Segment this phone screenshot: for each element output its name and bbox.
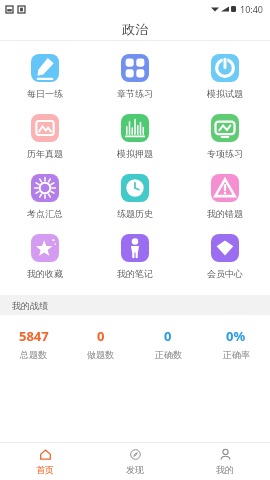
- staticText: 我的战绩: [12, 300, 48, 311]
- button[interactable]: 会员中心: [180, 230, 270, 283]
- button[interactable]: 我的: [180, 443, 270, 480]
- staticText: 我的: [216, 464, 234, 475]
- staticText: 练题历史: [117, 208, 153, 219]
- staticText: 正确数: [155, 349, 182, 360]
- staticText: 章节练习: [117, 88, 153, 99]
- staticText: 考点汇总: [27, 208, 63, 219]
- staticText: 首页: [36, 464, 54, 475]
- staticText: 0: [97, 327, 105, 345]
- staticText: 10:40: [240, 3, 264, 15]
- staticText: 正确率: [223, 349, 250, 360]
- button[interactable]: 模拟押题: [90, 110, 180, 163]
- staticText: 做题数: [87, 349, 114, 360]
- button[interactable]: 5847: [0, 327, 67, 360]
- button[interactable]: 我的收藏: [0, 230, 90, 283]
- button[interactable]: 章节练习: [90, 50, 180, 103]
- button[interactable]: 历年真题: [0, 110, 90, 163]
- staticText: 模拟试题: [207, 88, 243, 99]
- button[interactable]: 0%: [202, 327, 270, 360]
- button[interactable]: 0: [67, 327, 134, 360]
- staticText: 0: [164, 327, 172, 345]
- staticText: 政治: [122, 21, 148, 37]
- staticText: 发现: [126, 464, 144, 475]
- staticText: 0%: [226, 327, 246, 345]
- button[interactable]: 首页: [0, 443, 90, 480]
- button[interactable]: 练题历史: [90, 170, 180, 223]
- staticText: 会员中心: [207, 268, 243, 279]
- staticText: 我的错题: [207, 208, 243, 219]
- staticText: 我的笔记: [117, 268, 153, 279]
- staticText: 历年真题: [27, 148, 63, 159]
- button[interactable]: 考点汇总: [0, 170, 90, 223]
- button[interactable]: 发现: [90, 443, 180, 480]
- staticText: 专项练习: [207, 148, 243, 159]
- button[interactable]: 0: [134, 327, 202, 360]
- staticText: 模拟押题: [117, 148, 153, 159]
- button[interactable]: 每日一练: [0, 50, 90, 103]
- button[interactable]: 我的笔记: [90, 230, 180, 283]
- staticText: 5847: [19, 327, 49, 345]
- staticText: 总题数: [20, 349, 47, 360]
- staticText: 我的收藏: [27, 268, 63, 279]
- button[interactable]: 专项练习: [180, 110, 270, 163]
- button[interactable]: 我的错题: [180, 170, 270, 223]
- staticText: 每日一练: [27, 88, 63, 99]
- button[interactable]: 模拟试题: [180, 50, 270, 103]
